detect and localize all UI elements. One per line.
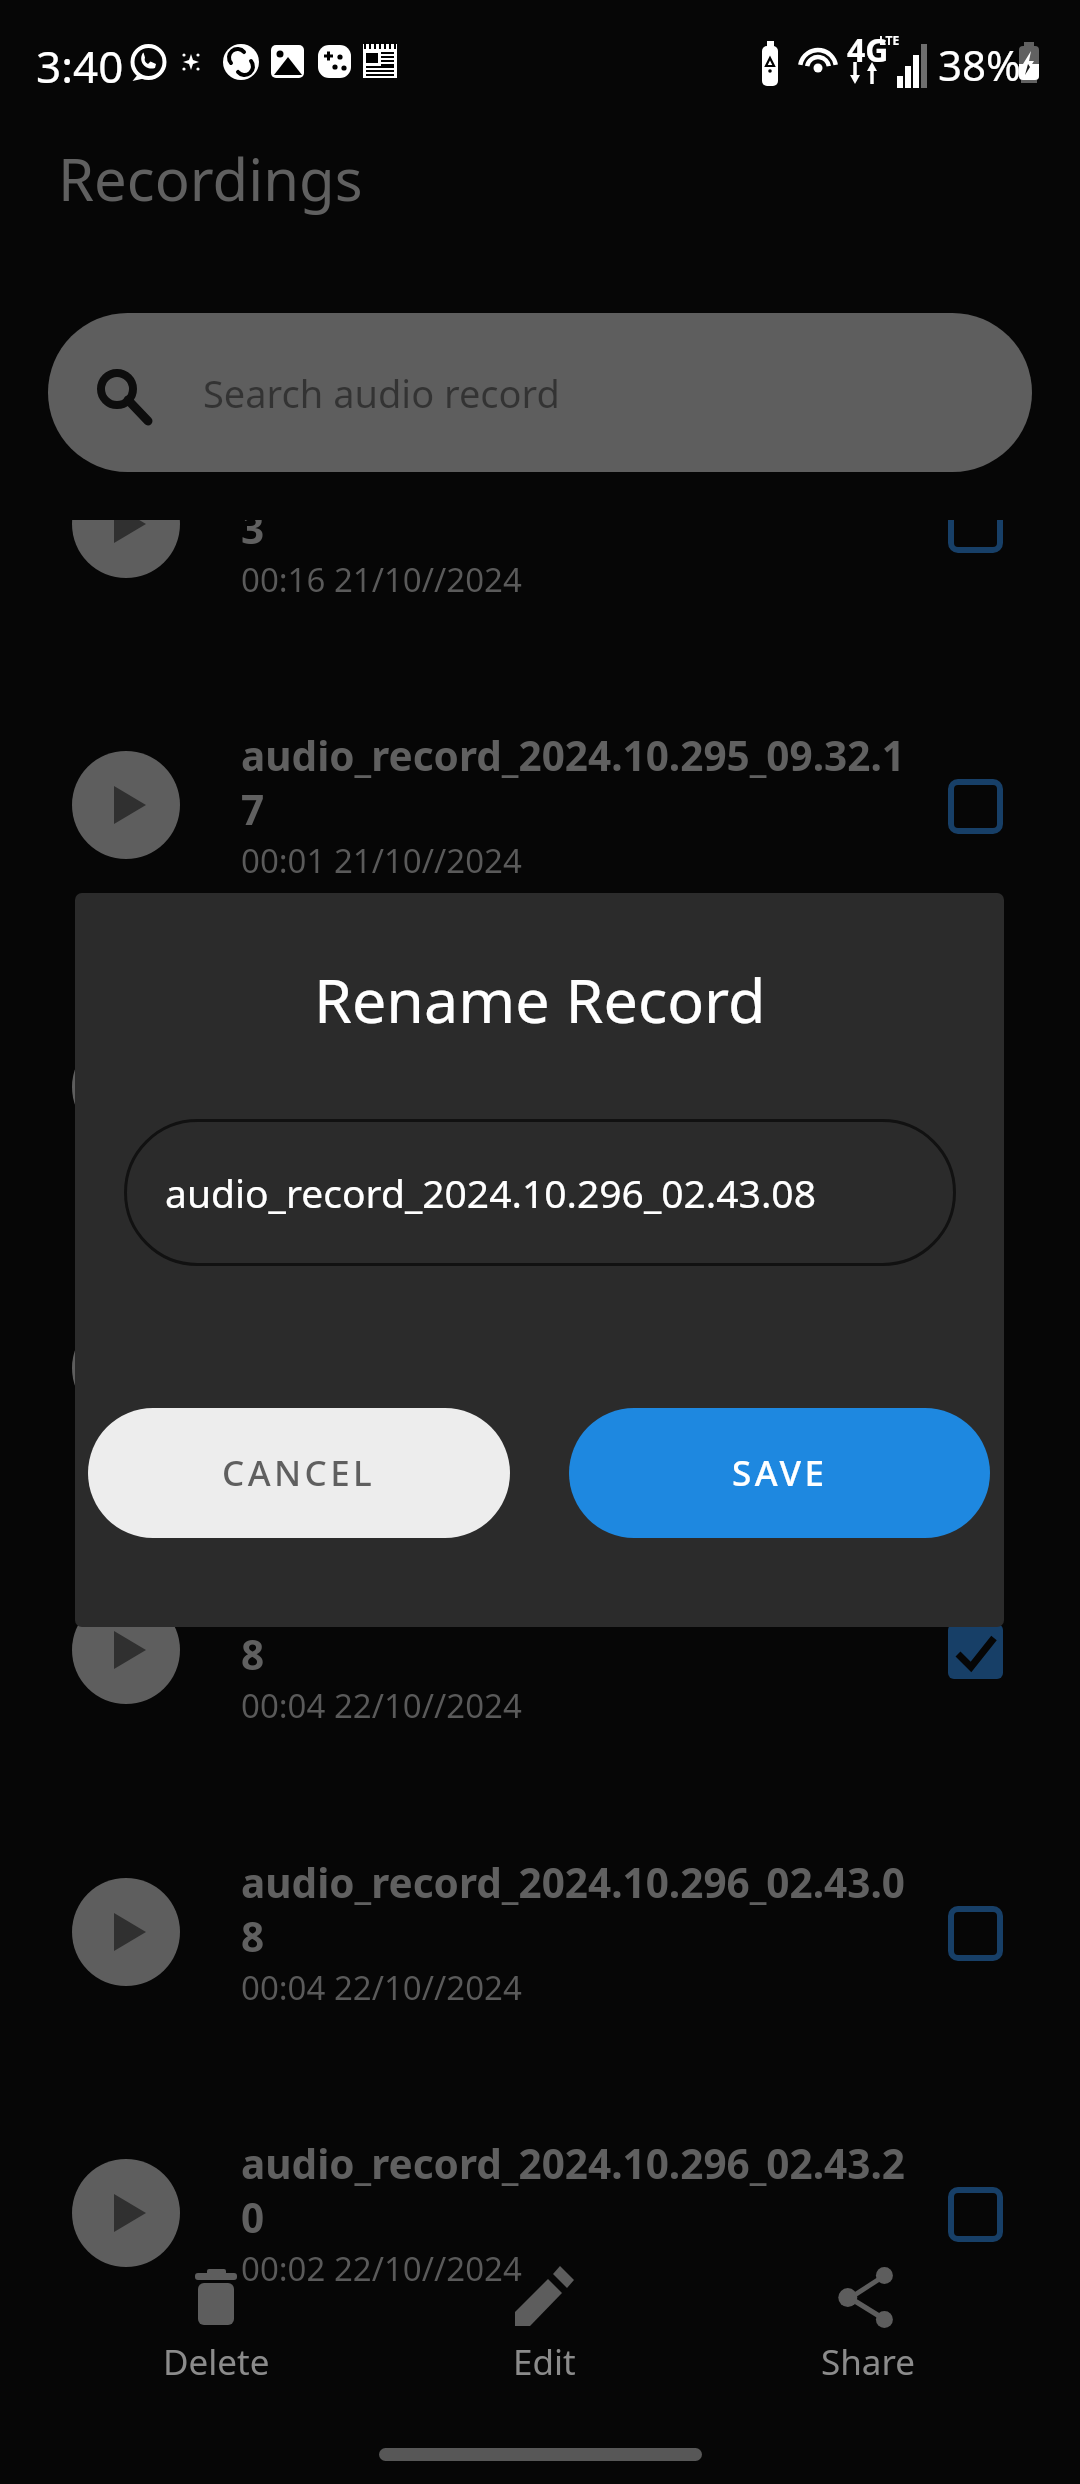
button[interactable]: audio_record_2024.10.295_09.32.1	[0, 397, 1080, 647]
staticText: 00:03 21/10//2024	[241, 1120, 522, 1165]
staticText: LTE	[879, 32, 900, 48]
staticText: 00:02 22/10//2024	[241, 2246, 522, 2291]
staticText: Recordings	[58, 139, 363, 218]
button[interactable]: audio_record_2024.10.296_02.43.2	[0, 2086, 1080, 2336]
button[interactable]: Share	[753, 2250, 983, 2400]
staticText: 8	[241, 1909, 265, 1964]
staticText: audio_record_2024.10.296_02.43.0	[241, 1573, 905, 1628]
button[interactable]: Select recording	[948, 1906, 1003, 1961]
staticText: 00:05 22/10//2024	[241, 1401, 522, 1446]
staticText: audio_record_2024.10.296_02.43.08	[165, 1166, 816, 1219]
button[interactable]: Search audio record	[48, 313, 1032, 472]
button[interactable]: audio_record_2024.10.295_09.32.1	[0, 678, 1080, 928]
staticText: 00:01 21/10//2024	[241, 838, 522, 883]
button[interactable]: CANCEL	[88, 1408, 510, 1538]
staticText: 00:16 21/10//2024	[241, 557, 522, 602]
button[interactable]: audio_record_2024.10.296_02.43.0	[0, 1523, 1080, 1773]
staticText: audio_record_2024.10.296_02.43.2	[241, 2136, 905, 2191]
staticText: Search audio record	[203, 367, 560, 419]
staticText: 38%	[938, 36, 1021, 93]
staticText: audio_record_2024.10.295_09.32.1	[241, 447, 905, 502]
staticText: 0	[241, 2190, 265, 2245]
staticText: SAVE	[732, 1449, 828, 1497]
button[interactable]: Edit	[429, 2250, 659, 2400]
staticText: audio_record_2024.10.295_09.32.1	[241, 728, 905, 783]
button[interactable]: audio_record_2024.10.296_02.43.0	[0, 960, 1080, 1210]
staticText: audio_record_2024.10.296_02.43.0	[241, 1010, 905, 1065]
button[interactable]: Select recording	[948, 779, 1003, 834]
staticText: 8	[241, 1627, 265, 1682]
button[interactable]: audio_record_2024.10.296_02.43.08	[124, 1119, 956, 1266]
staticText: Rename Record	[314, 958, 766, 1041]
button[interactable]: audio_record_2024.10.296_02.43.0	[0, 1805, 1080, 2055]
button[interactable]: Delete	[101, 2250, 331, 2400]
button[interactable]: Select recording	[948, 2187, 1003, 2242]
staticText: 00:04 22/10//2024	[241, 1965, 522, 2010]
staticText: audio_record_2024.10.296_02.43.0	[241, 1855, 905, 1910]
staticText: Edit	[513, 2338, 576, 2386]
button[interactable]: audio_record_2024.10.296_02.43.0	[0, 1241, 1080, 1491]
staticText: Share	[821, 2338, 915, 2386]
staticText: Delete	[163, 2338, 270, 2386]
staticText: 7	[241, 782, 265, 837]
staticText: 4G	[847, 28, 889, 72]
button[interactable]: Select recording	[948, 1624, 1003, 1679]
staticText: 3:40	[36, 36, 124, 96]
staticText: CANCEL	[222, 1449, 376, 1497]
button[interactable]: SAVE	[569, 1408, 990, 1538]
staticText: 3	[241, 501, 265, 556]
staticText: 00:04 22/10//2024	[241, 1683, 522, 1728]
button[interactable]: Select recording	[948, 498, 1003, 553]
